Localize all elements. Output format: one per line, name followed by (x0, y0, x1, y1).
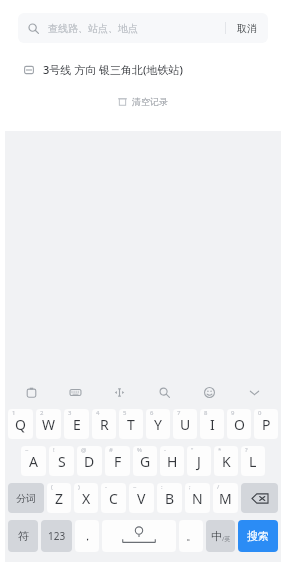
button[interactable]: V (129, 483, 154, 513)
staticText: 0 (258, 409, 262, 417)
button[interactable]: 3号线 方向 银三角北(地铁站) (0, 57, 286, 82)
button[interactable]: 。 (179, 520, 203, 552)
button[interactable]: N (185, 483, 210, 513)
staticText: K (222, 452, 231, 471)
button[interactable]: T (119, 409, 143, 439)
staticText: 3 (68, 409, 72, 417)
button[interactable]: B (157, 483, 182, 513)
staticText: ) (78, 483, 80, 491)
staticText: Y (154, 415, 162, 434)
button[interactable]: Keyboard layout (53, 380, 97, 404)
button[interactable]: Y (146, 409, 170, 439)
staticText: W (42, 415, 56, 434)
staticText: ， (82, 529, 93, 543)
button[interactable]: A (21, 446, 46, 476)
staticText: 符 (18, 529, 29, 543)
staticText: @ (81, 446, 87, 454)
staticText: E (73, 415, 81, 434)
button[interactable]: U (173, 409, 197, 439)
staticText: Z (55, 489, 64, 508)
button[interactable]: X (74, 483, 98, 513)
staticText: D (84, 452, 95, 471)
button[interactable]: 清空记录 (108, 92, 178, 111)
staticText: 1 (12, 409, 16, 417)
staticText: J (197, 452, 201, 471)
staticText: 5 (123, 409, 127, 417)
button[interactable]: Search (142, 380, 187, 404)
staticText: - (164, 446, 166, 454)
staticText: F (114, 452, 122, 471)
staticText: 2 (40, 409, 44, 417)
button[interactable]: Hide keyboard (232, 380, 277, 404)
staticText: S (58, 452, 66, 471)
button[interactable]: 搜索 (238, 520, 278, 552)
staticText: V (137, 489, 146, 508)
staticText: 4 (96, 409, 100, 417)
button[interactable]: ， (75, 520, 99, 552)
button[interactable]: E (64, 409, 89, 439)
button[interactable]: Backspace (241, 483, 278, 513)
staticText: M (219, 489, 232, 508)
staticText: 中 (211, 529, 222, 543)
button[interactable]: R (92, 409, 116, 439)
button[interactable]: Clipboard (9, 380, 53, 404)
staticText: ; (189, 483, 191, 491)
staticText: 9 (231, 409, 235, 417)
staticText: 查线路、站点、地点 (48, 22, 138, 35)
button[interactable]: F (105, 446, 130, 476)
button[interactable]: P (254, 409, 278, 439)
staticText: /英 (222, 535, 231, 543)
staticText: # (109, 446, 113, 454)
staticText: T (127, 415, 135, 434)
staticText: P (262, 415, 271, 434)
button[interactable]: Space (102, 520, 176, 552)
button[interactable]: H (160, 446, 184, 476)
staticText: O (234, 415, 245, 434)
button[interactable]: M (213, 483, 238, 513)
staticText: 取消 (237, 22, 257, 35)
button[interactable]: Emoji (187, 380, 232, 404)
staticText: 6 (150, 409, 154, 417)
button[interactable]: C (101, 483, 126, 513)
button[interactable]: 取消 (226, 13, 268, 43)
staticText: - (105, 483, 107, 491)
staticText: / (217, 483, 220, 491)
staticText: R (100, 415, 109, 434)
staticText: ~ (133, 483, 137, 491)
button[interactable]: K (214, 446, 238, 476)
staticText: B (165, 489, 175, 508)
staticText: ( (51, 483, 53, 491)
button[interactable]: G (133, 446, 157, 476)
button[interactable]: Move cursor (97, 380, 142, 404)
button[interactable]: O (227, 409, 251, 439)
staticText: * (218, 446, 222, 454)
button[interactable]: I (200, 409, 224, 439)
staticText: : (161, 483, 163, 491)
button[interactable]: 123 (41, 520, 72, 552)
button[interactable]: Z (47, 483, 71, 513)
staticText: 清空记录 (132, 96, 168, 107)
staticText: G (140, 452, 151, 471)
staticText: 分词 (16, 492, 36, 505)
staticText: 123 (48, 529, 66, 543)
staticText: H (167, 452, 178, 471)
staticText: 。 (186, 529, 197, 543)
button[interactable]: Q (8, 409, 33, 439)
staticText: " (191, 446, 194, 454)
button[interactable]: W (36, 409, 61, 439)
button[interactable]: J (187, 446, 211, 476)
staticText: N (192, 489, 203, 508)
button[interactable]: S (49, 446, 74, 476)
button[interactable]: D (77, 446, 102, 476)
staticText: U (180, 415, 191, 434)
button[interactable]: 分词 (8, 483, 44, 513)
staticText: L (249, 452, 257, 471)
staticText: ~ (25, 446, 29, 454)
staticText: C (109, 489, 118, 508)
staticText: ? (245, 446, 248, 454)
staticText: % (137, 446, 142, 454)
button[interactable]: 中 (206, 520, 235, 552)
button[interactable]: L (241, 446, 265, 476)
staticText: I (210, 415, 215, 434)
button[interactable]: 符 (8, 520, 38, 552)
